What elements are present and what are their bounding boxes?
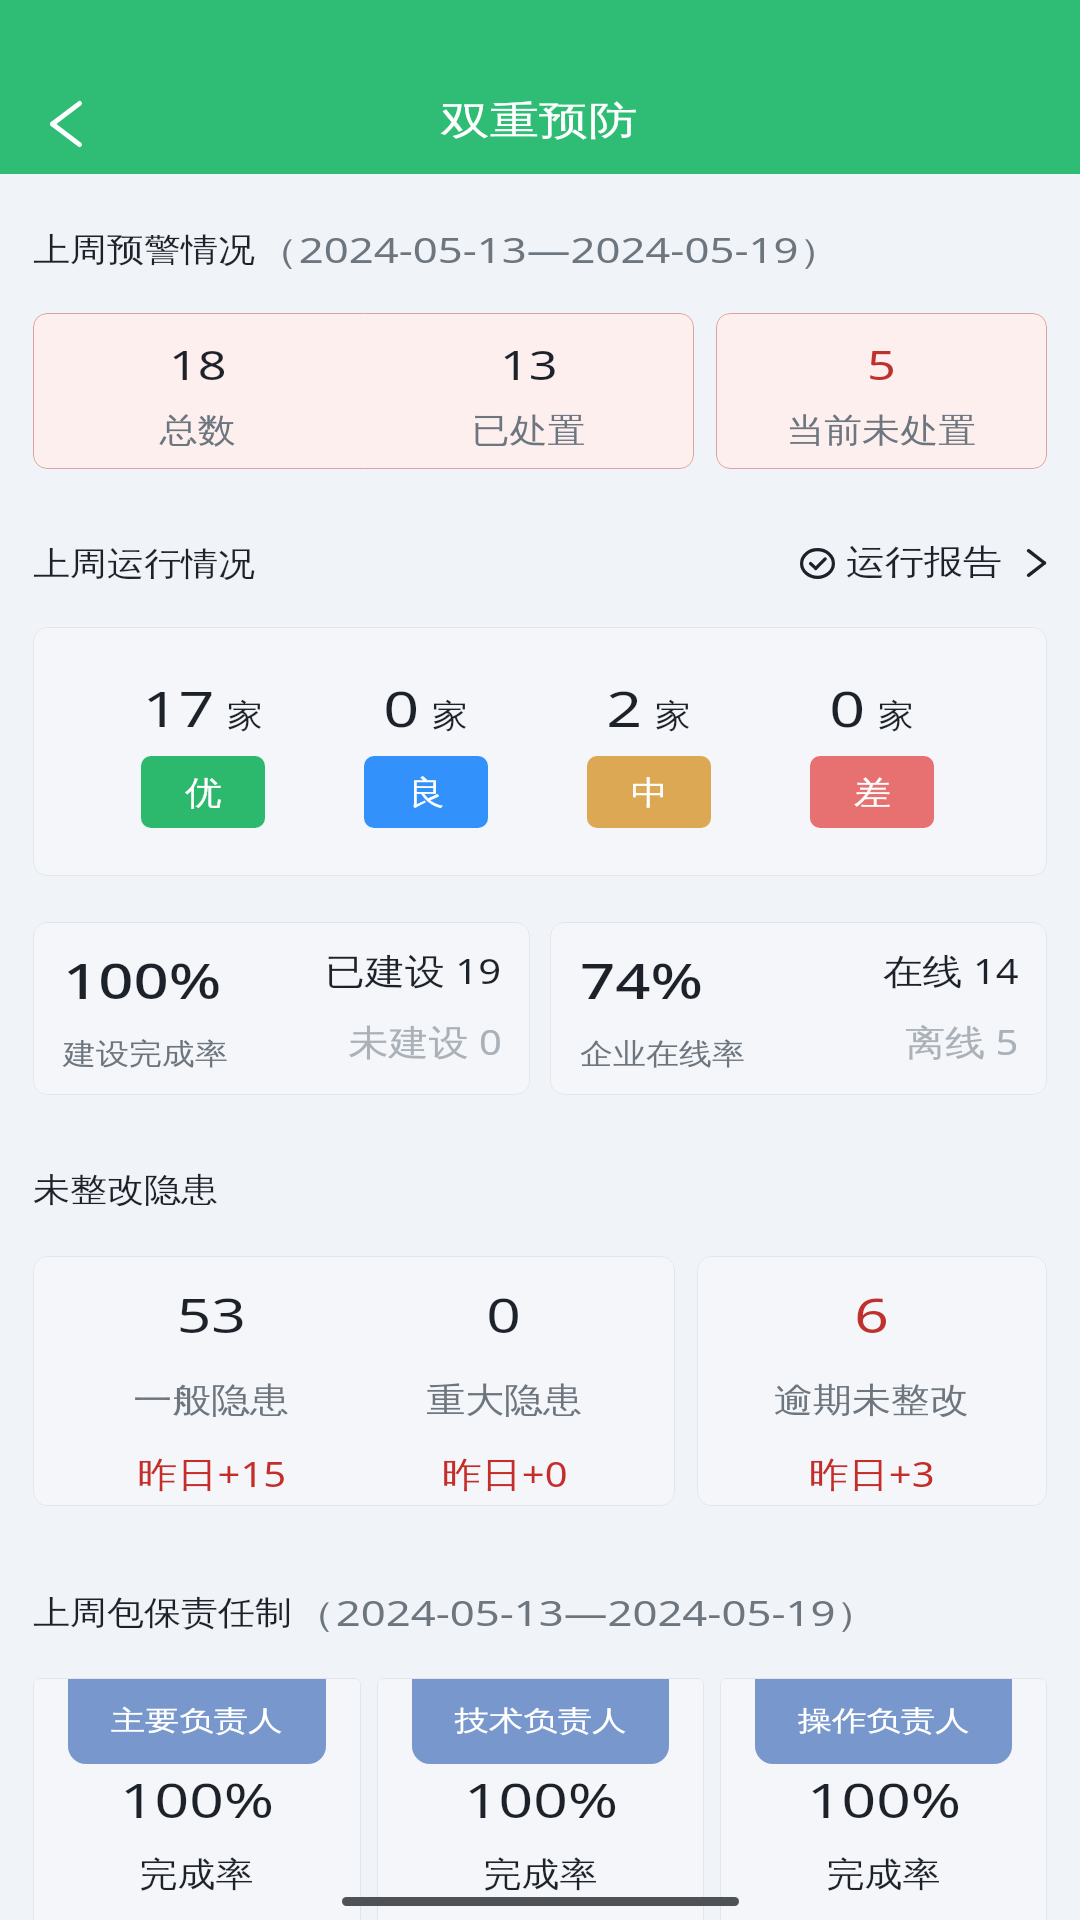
staticText: 企业在线率 [580, 1036, 746, 1073]
staticText: 上周预警情况 [33, 229, 255, 270]
staticText: 优 [185, 772, 222, 813]
staticText: 0 [383, 674, 420, 742]
staticText: 100% [120, 1767, 274, 1832]
staticText: 已建设 19 [325, 946, 502, 994]
staticText: 昨日+15 [138, 1449, 286, 1497]
button[interactable]: 主要负责人 [33, 1678, 361, 1920]
staticText: 未建设 0 [349, 1017, 502, 1065]
staticText: 2 [606, 674, 643, 742]
staticText: 家 [227, 696, 263, 736]
button[interactable]: 100% [33, 922, 530, 1095]
staticText: 家 [878, 696, 914, 736]
staticText: 在线 14 [883, 946, 1019, 994]
button[interactable]: 6 [697, 1256, 1047, 1506]
staticText: 100% [63, 947, 222, 1013]
staticText: 0 [486, 1282, 522, 1347]
staticText: 昨日+0 [442, 1449, 568, 1497]
staticText: 差 [854, 772, 891, 813]
staticText: 双重预防 [440, 96, 639, 145]
staticText: 100% [464, 1767, 618, 1832]
button[interactable]: 17 [91, 674, 314, 828]
staticText: 5 [867, 337, 896, 391]
button[interactable]: 0 [760, 674, 983, 828]
staticText: 总数 [160, 410, 236, 452]
button[interactable]: 53 [33, 1256, 675, 1506]
staticText: 13 [500, 337, 558, 391]
staticText: 操作负责人 [798, 1704, 970, 1739]
staticText: 中 [631, 772, 668, 813]
staticText: 主要负责人 [111, 1704, 283, 1739]
staticText: 运行报告 [846, 541, 1003, 585]
button[interactable]: 74% [550, 922, 1047, 1095]
button[interactable]: 运行报告 [800, 541, 1047, 585]
staticText: 53 [177, 1282, 246, 1347]
staticText: 良 [408, 772, 445, 813]
staticText: 未整改隐患 [33, 1169, 219, 1210]
staticText: 逾期未整改 [774, 1379, 969, 1423]
button[interactable]: 5 [716, 313, 1047, 469]
staticText: 18 [169, 337, 227, 391]
staticText: （2024-05-13—2024-05-19） [292, 1589, 879, 1636]
staticText: （2024-05-13—2024-05-19） [255, 226, 842, 273]
staticText: 当前未处置 [786, 410, 977, 452]
staticText: 0 [829, 674, 866, 742]
staticText: 17 [142, 674, 214, 742]
staticText: 100% [807, 1767, 961, 1832]
staticText: 家 [432, 696, 468, 736]
staticText: 已处置 [471, 410, 586, 452]
staticText: 技术负责人 [455, 1704, 627, 1739]
staticText: 完成率 [826, 1854, 941, 1896]
staticText: 重大隐患 [426, 1379, 583, 1423]
staticText: 离线 5 [905, 1017, 1019, 1065]
button[interactable]: 技术负责人 [377, 1678, 704, 1920]
staticText: 完成率 [139, 1854, 254, 1896]
staticText: 上周包保责任制 [33, 1592, 292, 1633]
staticText: 一般隐患 [133, 1379, 290, 1423]
button[interactable]: Back [18, 76, 114, 172]
button[interactable]: 操作负责人 [720, 1678, 1047, 1920]
staticText: 昨日+3 [809, 1449, 935, 1497]
button[interactable]: 0 [314, 674, 537, 828]
staticText: 上周运行情况 [33, 543, 255, 584]
staticText: 完成率 [483, 1854, 598, 1896]
staticText: 家 [655, 696, 691, 736]
staticText: 74% [580, 947, 704, 1013]
button[interactable]: 2 [537, 674, 760, 828]
button[interactable]: 18 [33, 313, 694, 469]
staticText: 6 [854, 1282, 890, 1347]
staticText: 建设完成率 [63, 1036, 229, 1073]
